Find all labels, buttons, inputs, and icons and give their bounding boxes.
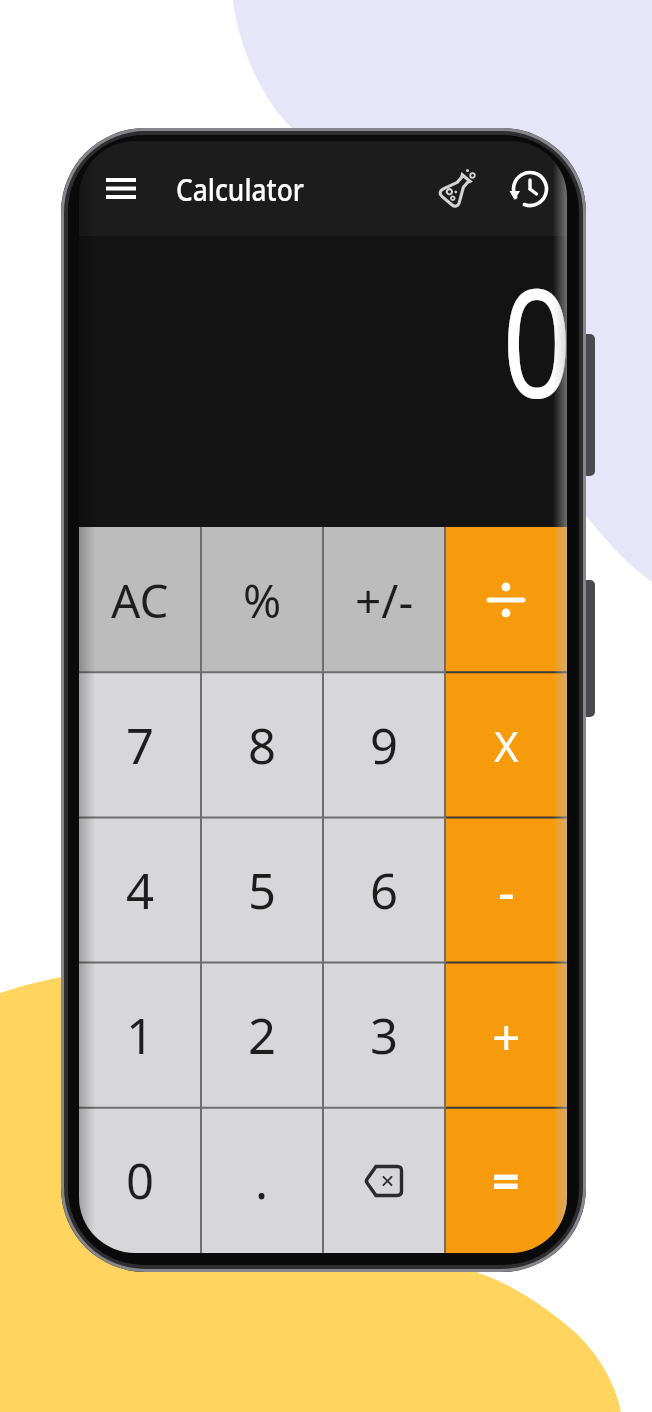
staticText: X [494, 717, 519, 774]
button[interactable]: + [445, 963, 567, 1108]
staticText: 6 [370, 857, 399, 924]
button[interactable] [437, 166, 483, 212]
staticText: . [255, 1147, 269, 1214]
button[interactable]: % [201, 527, 323, 673]
staticText: 2 [248, 1002, 277, 1069]
button[interactable]: 8 [201, 673, 323, 818]
staticText: 0 [502, 238, 567, 442]
button[interactable]: +/- [323, 527, 445, 673]
button[interactable]: . [201, 1108, 323, 1253]
button[interactable]: 5 [201, 818, 323, 963]
staticText: Calculator [176, 168, 304, 210]
button[interactable]: 6 [323, 818, 445, 963]
button[interactable]: 3 [323, 963, 445, 1108]
staticText: 9 [370, 712, 399, 779]
button[interactable]: 1 [79, 963, 201, 1108]
staticText: 8 [248, 712, 277, 779]
button[interactable]: - [445, 818, 567, 963]
staticText: AC [111, 569, 169, 632]
staticText: % [243, 569, 282, 632]
staticText: + [492, 1002, 521, 1070]
button[interactable]: X [445, 673, 567, 818]
button[interactable]: 0 [79, 1108, 201, 1253]
button[interactable]: 4 [79, 818, 201, 963]
button[interactable] [507, 166, 553, 212]
button[interactable]: 2 [201, 963, 323, 1108]
staticText: - [498, 855, 515, 926]
staticText: 3 [370, 1002, 399, 1069]
staticText: 5 [248, 857, 277, 924]
staticText: 1 [126, 1002, 155, 1069]
staticText: +/- [355, 569, 414, 632]
staticText: = [492, 1148, 520, 1213]
button[interactable] [323, 1108, 445, 1253]
staticText: 0 [126, 1147, 155, 1214]
button[interactable]: 7 [79, 673, 201, 818]
button[interactable] [99, 167, 143, 211]
button[interactable]: AC [79, 527, 201, 673]
button[interactable]: = [445, 1108, 567, 1253]
staticText: 4 [126, 857, 155, 924]
staticText: 7 [126, 712, 155, 779]
button[interactable] [445, 527, 567, 673]
button[interactable]: 9 [323, 673, 445, 818]
